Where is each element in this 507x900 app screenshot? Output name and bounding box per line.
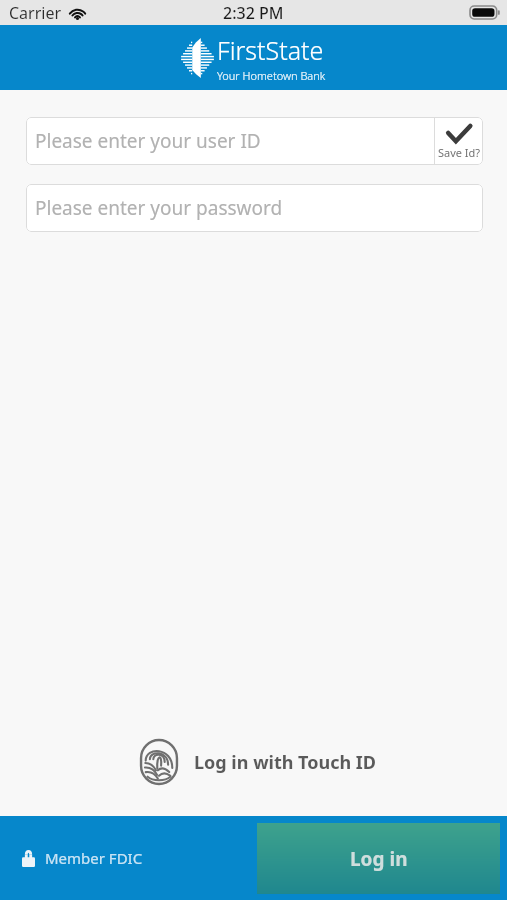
staticText: Carrier [9,2,62,24]
button[interactable]: Log in [257,823,500,894]
staticText: Please enter your user ID [35,128,261,154]
button[interactable]: Please enter your user ID [26,117,434,165]
button[interactable]: Please enter your password [26,184,483,232]
staticText: FirstState [217,33,324,67]
staticText: Member FDIC [45,848,143,868]
button[interactable]: Save Id [435,117,483,165]
staticText: Log in [350,846,408,872]
button[interactable]: Member FDIC [0,840,155,876]
staticText: Your Hometown Bank [217,68,326,83]
staticText: Save Id? [438,145,481,160]
staticText: Log in with Touch ID [194,750,377,775]
button[interactable]: Log in with Touch ID [0,735,507,789]
staticText: Please enter your password [35,195,283,221]
staticText: 2:32 PM [223,2,284,24]
